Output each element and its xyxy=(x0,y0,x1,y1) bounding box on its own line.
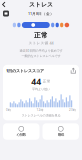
staticText: 1日のストレススコア xyxy=(6,68,44,73)
staticText: 正常 xyxy=(34,31,48,39)
button[interactable]: Share xyxy=(71,68,76,73)
staticText: 睡眠 xyxy=(58,132,64,137)
staticText: 一般的なストレスレベルです xyxy=(21,54,60,58)
button[interactable]: Calendar xyxy=(3,10,9,16)
button[interactable]: 心拍数 xyxy=(3,123,39,140)
staticText: 12時 xyxy=(36,108,43,112)
staticText: 平均より低い xyxy=(32,87,50,91)
staticText: 0時 xyxy=(6,108,11,112)
staticText: 心拍数 xyxy=(17,132,26,137)
button[interactable]: Back xyxy=(0,1,8,8)
staticText: ストレスレベルの詳細を見る xyxy=(21,113,60,117)
staticText: ストレス xyxy=(29,1,53,8)
staticText: 44 xyxy=(31,75,41,87)
staticText: 過去30日間の平均より低めです xyxy=(19,48,62,53)
staticText: 23時 xyxy=(69,108,76,112)
staticText: ストレス値 44 xyxy=(28,40,53,45)
staticText: 11月8日（金） xyxy=(28,11,54,16)
staticText: 正常 xyxy=(43,79,51,84)
button[interactable]: 睡眠 xyxy=(42,123,79,140)
